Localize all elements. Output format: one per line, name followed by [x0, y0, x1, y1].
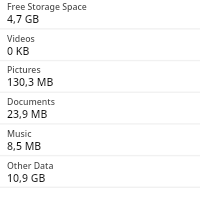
- staticText: Other Data: [7, 160, 54, 172]
- button[interactable]: Documents: [0, 95, 200, 127]
- staticText: Documents: [7, 96, 55, 108]
- staticText: Videos: [7, 33, 35, 45]
- button[interactable]: Other Data: [0, 159, 200, 191]
- staticText: 130,3 MB: [7, 75, 54, 89]
- staticText: Music: [7, 128, 32, 140]
- staticText: 8,5 MB: [7, 139, 42, 153]
- button[interactable]: Pictures: [0, 63, 200, 95]
- staticText: 23,9 MB: [7, 107, 48, 121]
- button[interactable]: Videos: [0, 32, 200, 64]
- staticText: Free Storage Space: [7, 1, 87, 13]
- staticText: 0 KB: [7, 44, 30, 58]
- button[interactable]: Free Storage Space: [0, 0, 200, 32]
- staticText: 10,9 GB: [7, 171, 46, 185]
- staticText: 4,7 GB: [7, 12, 40, 26]
- button[interactable]: Music: [0, 127, 200, 159]
- staticText: Pictures: [7, 64, 41, 76]
